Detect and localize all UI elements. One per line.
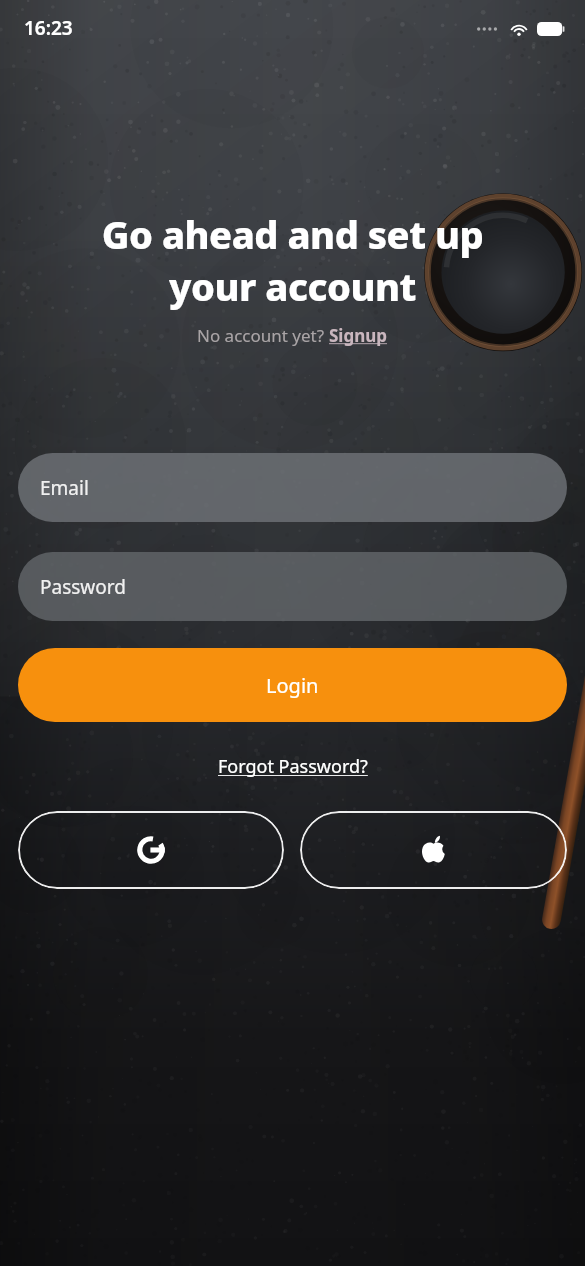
staticText: Login — [266, 672, 319, 699]
button[interactable]: Signup — [329, 324, 388, 347]
button[interactable]: Email — [18, 453, 567, 522]
staticText: Signup — [329, 324, 388, 347]
button[interactable]: Login — [18, 648, 567, 722]
button[interactable]: Password — [18, 552, 567, 621]
staticText: Go ahead and set up your account — [26, 208, 559, 312]
staticText: Forgot Password? — [218, 754, 368, 779]
button[interactable]: Sign in with Apple — [300, 811, 567, 889]
button[interactable]: Forgot Password? — [218, 754, 368, 779]
button[interactable]: Sign in with Google — [18, 811, 284, 889]
staticText: 16:23 — [24, 15, 73, 41]
staticText: Email — [40, 475, 89, 501]
staticText: No account yet? — [197, 324, 329, 347]
staticText: Password — [40, 574, 126, 600]
